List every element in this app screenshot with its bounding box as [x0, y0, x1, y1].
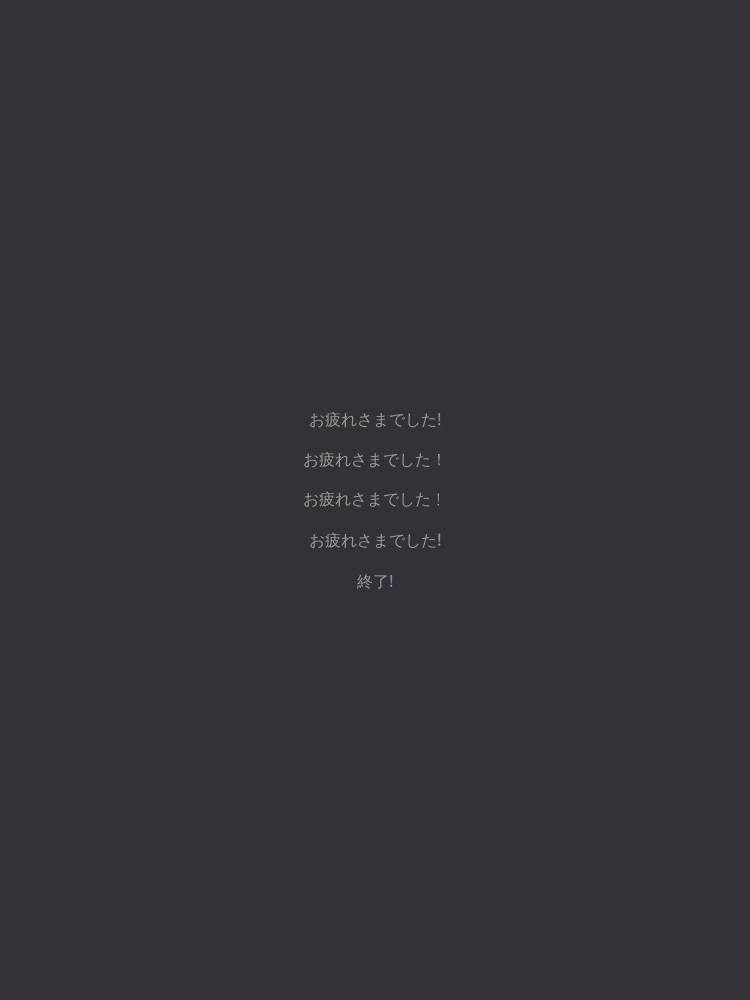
staticText: お疲れさまでした﹗ — [303, 489, 447, 509]
staticText: 終了! — [357, 570, 393, 591]
staticText: お疲れさまでした! — [309, 529, 441, 550]
staticText: お疲れさまでした！ — [303, 450, 447, 469]
staticText: お疲れさまでした! — [309, 408, 441, 430]
